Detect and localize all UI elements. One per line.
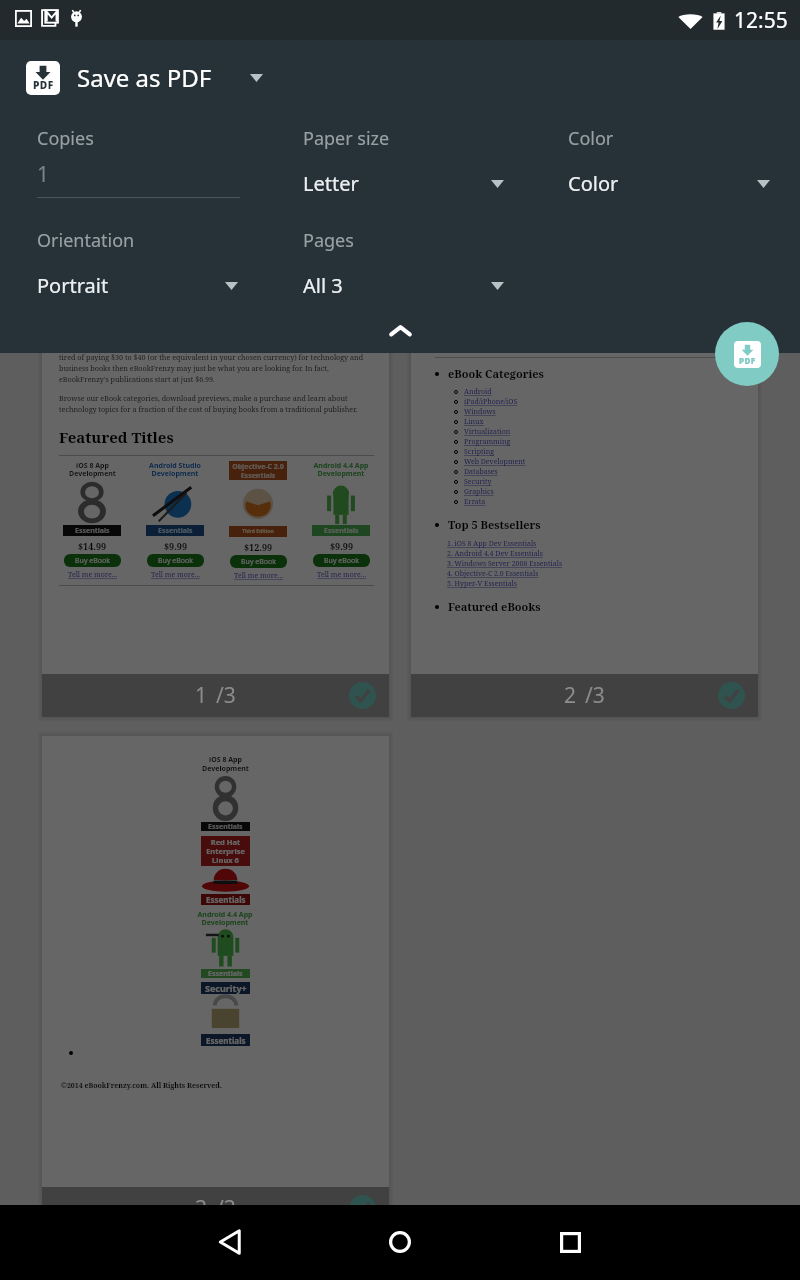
staticText: Android — [464, 387, 492, 397]
staticText: 4. Objective-C 2.0 Essentials — [447, 569, 539, 579]
staticText: Portrait — [37, 272, 109, 299]
staticText: Web Development — [464, 457, 526, 467]
staticText: PDF — [33, 78, 54, 92]
button[interactable]: Page 1 preview — [42, 337, 389, 674]
button[interactable]: Portrait — [37, 272, 238, 299]
button[interactable]: Letter — [303, 170, 504, 197]
button[interactable]: Recents — [545, 1217, 595, 1267]
staticText: Third Edition — [242, 528, 274, 535]
staticText: $9.99 — [164, 540, 187, 552]
staticText: /3 — [216, 681, 236, 710]
staticText: Orientation — [37, 228, 135, 253]
staticText: Red Hat Enterprise Linux 6 — [206, 837, 245, 865]
staticText: eBook Categories — [448, 366, 544, 381]
staticText: Programming — [464, 437, 511, 447]
button[interactable]: PDF — [0, 40, 800, 115]
staticText: Tell me more... — [317, 570, 366, 580]
staticText: Buy eBook — [241, 557, 276, 567]
staticText: 12:55 — [734, 6, 788, 35]
staticText: Color — [568, 126, 614, 151]
staticText: 1 — [195, 681, 208, 710]
button[interactable]: 3 — [42, 1187, 389, 1230]
staticText: iPad/iPhone/iOS — [464, 397, 518, 407]
staticText: Featured eBooks — [448, 599, 541, 614]
staticText: Pages — [303, 228, 354, 253]
staticText: Browse our eBook categories, download pr… — [59, 393, 374, 414]
other: Page selected — [349, 682, 376, 709]
staticText: Windows — [464, 407, 496, 417]
staticText: Paper size — [303, 126, 390, 151]
staticText: /3 — [585, 681, 605, 710]
button[interactable]: Collapse options — [335, 307, 465, 353]
button[interactable]: Save as PDF — [715, 322, 779, 386]
button[interactable]: 1 — [42, 674, 389, 717]
staticText: Buy eBook — [324, 556, 359, 566]
staticText: 3. Windows Server 2008 Essentials — [447, 559, 563, 569]
staticText: 5. Hyper-V Essentials — [447, 579, 517, 589]
button[interactable]: Color — [568, 170, 770, 197]
staticText: /3 — [216, 1194, 236, 1223]
other: Page selected — [718, 682, 745, 709]
staticText: Android 4.4 App Development — [197, 910, 253, 927]
staticText: Save as PDF — [77, 61, 212, 94]
staticText: Featured Titles — [59, 427, 174, 447]
button[interactable]: Page 3 preview — [42, 736, 389, 1187]
staticText: Linux — [464, 417, 484, 427]
button[interactable]: Back — [205, 1217, 255, 1267]
staticText: Color — [568, 170, 619, 197]
staticText: $12.99 — [244, 541, 273, 553]
staticText: iOS 8 App Development — [69, 461, 116, 479]
staticText: Graphics — [464, 487, 494, 497]
staticText: Security — [464, 477, 492, 487]
staticText: 1. iOS 8 App Dev Essentials — [447, 539, 537, 549]
staticText: 2. Android 4.4 Dev Essentials — [447, 549, 543, 559]
staticText: Essentials — [158, 526, 193, 536]
button[interactable]: Page 2 preview — [411, 337, 758, 674]
staticText: Objective-C 2.0 Essentials — [232, 462, 284, 480]
button[interactable]: 1 — [37, 154, 240, 198]
staticText: Virtualization — [464, 427, 511, 437]
button[interactable]: Home — [375, 1217, 425, 1267]
staticText: Essentials — [75, 526, 110, 536]
staticText: Databases — [464, 467, 498, 477]
staticText: Scripting — [464, 447, 495, 457]
staticText: Essentials — [206, 894, 246, 905]
staticText: iOS 8 App Development — [202, 755, 249, 773]
staticText: Tell me more... — [151, 570, 200, 580]
staticText: Tell me more... — [234, 571, 283, 581]
staticText: 1 — [37, 160, 50, 189]
staticText: Buy eBook — [75, 556, 110, 566]
staticText: Essentials — [324, 526, 359, 536]
staticText: Security+ — [205, 982, 247, 994]
staticText: Tell me more... — [68, 570, 117, 580]
staticText: Top 5 Bestsellers — [448, 517, 541, 532]
staticText: Essentials — [208, 822, 243, 831]
staticText: ©2014 eBookFrenzy.com. All Rights Reserv… — [61, 1081, 222, 1091]
button[interactable]: 2 — [411, 674, 758, 717]
staticText: Essentials — [208, 969, 243, 978]
staticText: All 3 — [303, 272, 343, 299]
staticText: PDF — [739, 355, 756, 366]
staticText: subject area, all at a fraction of the c… — [59, 341, 374, 384]
staticText: $9.99 — [330, 540, 353, 552]
staticText: Essentials — [206, 1035, 246, 1046]
other: Page selected — [349, 1195, 376, 1222]
staticText: $14.99 — [78, 540, 107, 552]
staticText: Buy eBook — [158, 556, 193, 566]
staticText: 2 — [564, 681, 577, 710]
staticText: Android Studio Development — [149, 461, 201, 479]
button[interactable]: All 3 — [303, 272, 504, 299]
staticText: Copies — [37, 126, 94, 151]
staticText: Android 4.4 App Development — [313, 461, 369, 479]
staticText: Errata — [464, 497, 486, 507]
staticText: 3 — [195, 1194, 208, 1223]
staticText: Letter — [303, 170, 359, 197]
